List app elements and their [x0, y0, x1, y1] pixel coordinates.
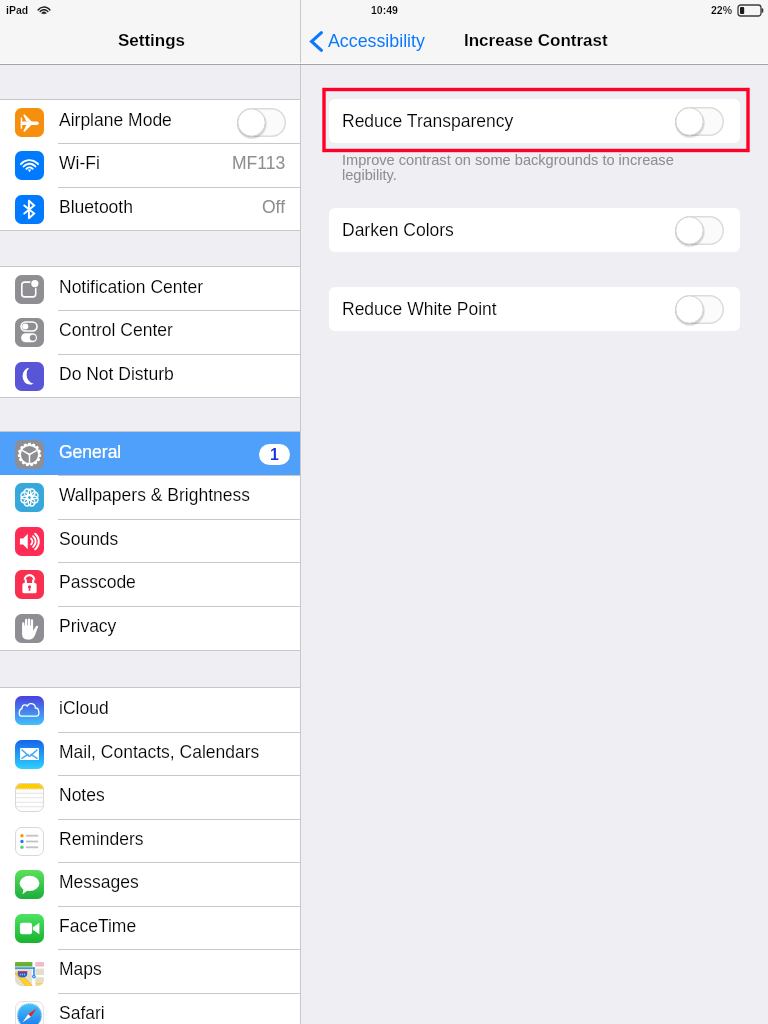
staticText: Accessibility [328, 31, 425, 51]
button[interactable]: Toggle Airplane Mode [237, 108, 286, 137]
button[interactable]: Reduce Transparency [329, 99, 740, 143]
staticText: 1 [270, 446, 279, 464]
staticText: Increase Contrast [464, 31, 608, 50]
staticText: Messages [59, 872, 139, 892]
button[interactable]: Reduce White Point [329, 287, 740, 331]
button[interactable]: Wi-Fi [0, 143, 300, 187]
button[interactable]: Privacy [0, 606, 300, 650]
staticText: 22% [711, 4, 733, 16]
staticText: 10:49 [371, 4, 398, 16]
staticText: Reduce Transparency [342, 111, 514, 131]
staticText: Sounds [59, 529, 119, 549]
button[interactable]: Safari [0, 993, 300, 1024]
staticText: Do Not Disturb [59, 364, 174, 384]
staticText: Settings [118, 31, 186, 50]
button[interactable]: Notes [0, 775, 300, 819]
button[interactable]: Control Center [0, 310, 300, 354]
button[interactable]: Airplane Mode [0, 100, 300, 144]
button[interactable]: Toggle Darken Colors [675, 216, 724, 245]
staticText: MF113 [232, 153, 286, 173]
button[interactable]: Sounds [0, 519, 300, 563]
staticText: Maps [59, 959, 102, 979]
staticText: Safari [59, 1003, 105, 1023]
button[interactable]: Messages [0, 862, 300, 906]
staticText: Wi-Fi [59, 153, 100, 173]
button[interactable]: Notification Center [0, 267, 300, 311]
staticText: Darken Colors [342, 220, 454, 240]
button[interactable]: Maps [0, 949, 300, 993]
button[interactable]: Bluetooth [0, 187, 300, 231]
button[interactable]: Accessibility [310, 31, 425, 52]
staticText: Airplane Mode [59, 110, 172, 130]
button[interactable]: Darken Colors [329, 208, 740, 252]
staticText: Reminders [59, 829, 144, 849]
button[interactable]: Passcode [0, 562, 300, 606]
button[interactable]: FaceTime [0, 906, 300, 950]
button[interactable]: Toggle Reduce Transparency [675, 107, 724, 136]
staticText: Privacy [59, 616, 117, 636]
staticText: General [59, 442, 122, 462]
staticText: Control Center [59, 320, 173, 340]
staticText: Mail, Contacts, Calendars [59, 742, 260, 762]
button[interactable]: Do Not Disturb [0, 354, 300, 398]
button[interactable]: iCloud [0, 688, 300, 732]
button[interactable]: General [0, 432, 300, 476]
staticText: FaceTime [59, 916, 137, 936]
button[interactable]: Wallpapers & Brightness [0, 475, 300, 519]
staticText: Wallpapers & Brightness [59, 485, 250, 505]
button[interactable]: Mail, Contacts, Calendars [0, 732, 300, 776]
staticText: Reduce White Point [342, 299, 497, 319]
staticText: Passcode [59, 572, 136, 592]
staticText: Improve contrast on some backgrounds to … [342, 152, 687, 183]
staticText: Off [262, 197, 286, 217]
button[interactable]: Reminders [0, 819, 300, 863]
staticText: Notes [59, 785, 105, 805]
button[interactable]: Toggle Reduce White Point [675, 295, 724, 324]
staticText: Notification Center [59, 277, 203, 297]
staticText: iPad [6, 4, 29, 16]
staticText: Bluetooth [59, 197, 133, 217]
staticText: iCloud [59, 698, 109, 718]
